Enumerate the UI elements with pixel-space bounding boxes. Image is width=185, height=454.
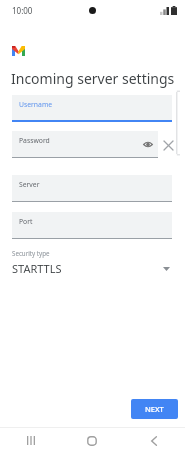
staticText: Server: [19, 180, 40, 189]
staticText: STARTTLS: [12, 261, 62, 276]
button[interactable]: Show password: [141, 138, 154, 151]
button[interactable]: NEXT: [131, 399, 178, 419]
button[interactable]: Back: [123, 427, 185, 454]
button[interactable]: Recent apps: [0, 427, 61, 454]
other: Expand security type: [163, 267, 170, 271]
staticText: Security type: [12, 249, 50, 257]
button[interactable]: Password: [12, 131, 158, 158]
staticText: Port: [19, 217, 33, 226]
staticText: 10:00: [12, 5, 33, 16]
button[interactable]: Port: [12, 212, 172, 239]
staticText: Incoming server settings: [11, 69, 175, 88]
staticText: NEXT: [145, 404, 164, 414]
button[interactable]: Home: [61, 427, 123, 454]
staticText: Username: [19, 100, 53, 109]
button[interactable]: Clear: [161, 138, 175, 152]
staticText: Password: [19, 136, 50, 145]
button[interactable]: Server: [12, 175, 172, 202]
button[interactable]: Security type: [12, 249, 173, 276]
button[interactable]: Username: [12, 95, 172, 122]
